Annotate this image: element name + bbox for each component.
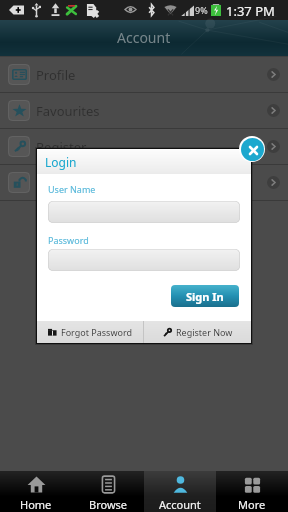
staticText: Favourites [36, 102, 100, 120]
staticText: Account [117, 28, 171, 47]
staticText: 9% [195, 4, 208, 16]
staticText: Login [36, 174, 71, 192]
button[interactable]: Register [0, 129, 288, 164]
button[interactable]: Sign In [171, 285, 239, 307]
staticText: Register [36, 138, 87, 156]
staticText: User Name [48, 183, 96, 195]
staticText: Login [45, 154, 77, 170]
staticText: Browse [89, 497, 128, 512]
button[interactable]: Forgot Password [37, 321, 143, 343]
button[interactable]: More [216, 471, 288, 512]
button[interactable]: Home [0, 471, 72, 512]
staticText: 1:37 PM [226, 2, 275, 20]
button[interactable]: Profile [0, 57, 288, 92]
button[interactable]: Login [0, 165, 288, 200]
button[interactable]: Account [144, 471, 216, 512]
button[interactable]: Favourites [0, 93, 288, 128]
staticText: Profile [36, 66, 76, 84]
staticText: Forgot Password [61, 326, 133, 338]
staticText: More [238, 497, 266, 512]
staticText: Home [20, 497, 52, 512]
staticText: Sign In [186, 289, 224, 304]
button[interactable]: Browse [72, 471, 144, 512]
staticText: Register Now [176, 326, 233, 338]
staticText: Password [48, 234, 89, 246]
button[interactable]: Close [239, 136, 265, 162]
staticText: Account [159, 497, 201, 512]
button[interactable]: Register Now [144, 321, 251, 343]
